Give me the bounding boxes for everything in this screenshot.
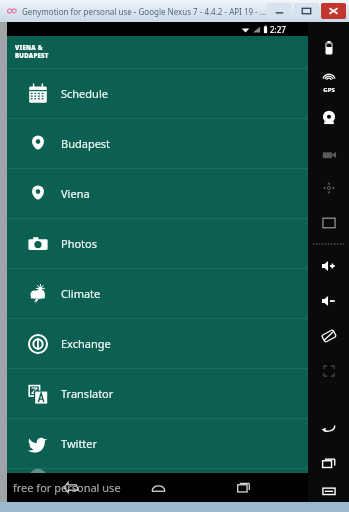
button[interactable]: Menu [308, 480, 349, 502]
staticText: GPS [323, 86, 335, 94]
button[interactable]: ID [308, 205, 349, 240]
button[interactable]: Twitter [7, 419, 308, 468]
button[interactable]: Viena [7, 169, 308, 218]
button[interactable]: Volume up [308, 248, 349, 283]
button[interactable]: Schedule [7, 69, 308, 118]
button[interactable]: Budapest [7, 119, 308, 168]
button[interactable]: Back [49, 473, 93, 502]
button[interactable]: Volume down [308, 283, 349, 318]
staticText: VIENA & [15, 44, 43, 52]
button[interactable]: Recents [222, 473, 266, 502]
staticText: Translator [61, 386, 114, 401]
staticText: Photos [61, 236, 98, 251]
staticText: Viena [61, 186, 90, 201]
button[interactable]: Recents [308, 445, 349, 480]
staticText: free for personal use [13, 480, 121, 495]
button[interactable]: Close [321, 3, 346, 19]
button[interactable]: Battery [308, 30, 349, 65]
staticText: Sync [61, 471, 85, 486]
button[interactable]: Back [308, 410, 349, 445]
staticText: Climate [61, 286, 101, 301]
staticText: Genymotion for personal use - Google Nex… [22, 6, 267, 17]
button[interactable]: Home [136, 473, 180, 502]
button[interactable]: Climate [7, 269, 308, 318]
staticText: 2:27 [270, 24, 286, 35]
staticText: Budapest [61, 136, 111, 151]
button[interactable]: Rotate [308, 318, 349, 353]
button[interactable]: Maximize [294, 3, 319, 19]
staticText: Exchange [61, 336, 111, 351]
button[interactable]: Video [308, 135, 349, 170]
button[interactable]: Photos [7, 219, 308, 268]
button[interactable]: Exchange [7, 319, 308, 368]
button[interactable]: GPS [308, 65, 349, 100]
button[interactable]: Camera [308, 100, 349, 135]
button[interactable]: Sync [7, 469, 308, 487]
staticText: BUDAPEST [15, 52, 49, 60]
button[interactable]: D-pad [308, 170, 349, 205]
staticText: Schedule [61, 86, 108, 101]
staticText: Twitter [61, 436, 98, 451]
button[interactable]: Zoom [308, 353, 349, 388]
button[interactable]: Translator [7, 369, 308, 418]
button[interactable]: Minimize [267, 3, 292, 19]
